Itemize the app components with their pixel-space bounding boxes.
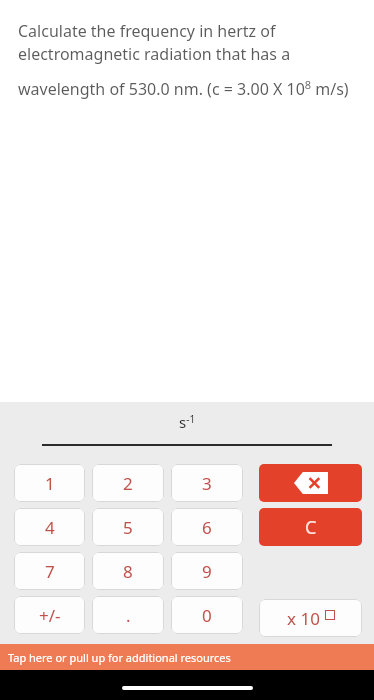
button[interactable]: +/-	[14, 596, 85, 634]
staticText: 9	[202, 560, 212, 583]
staticText: 4	[45, 516, 55, 539]
staticText: C	[305, 515, 317, 540]
staticText: 2	[123, 472, 133, 495]
button[interactable]: .	[92, 596, 164, 634]
button[interactable]: C	[259, 508, 362, 546]
button[interactable]: 2	[92, 464, 164, 502]
button[interactable]: Times ten to the power	[259, 599, 362, 637]
button[interactable]: 9	[171, 552, 243, 590]
button[interactable]: 0	[171, 596, 243, 634]
button[interactable]: 5	[92, 508, 164, 546]
staticText: 5	[123, 516, 133, 539]
button[interactable]: 7	[14, 552, 85, 590]
staticText: s-1	[179, 412, 196, 432]
staticText: x 10	[287, 607, 320, 630]
button[interactable]: Tap here or pull up for additional resou…	[0, 644, 374, 670]
staticText: +/-	[39, 604, 61, 627]
staticText: 3	[202, 472, 212, 495]
staticText: 8	[123, 560, 133, 583]
button[interactable]: 6	[171, 508, 243, 546]
button[interactable]: 8	[92, 552, 164, 590]
button[interactable]: 4	[14, 508, 85, 546]
staticText: 0	[202, 604, 212, 627]
staticText: Tap here or pull up for additional resou…	[8, 650, 231, 665]
button[interactable]: Backspace	[259, 464, 362, 502]
staticText: Calculate the frequency in hertz of elec…	[18, 20, 360, 99]
staticText: .	[126, 604, 131, 627]
staticText: 1	[45, 472, 55, 495]
staticText: 7	[45, 560, 55, 583]
button[interactable]: 3	[171, 464, 243, 502]
button[interactable]: 1	[14, 464, 85, 502]
staticText: 6	[202, 516, 212, 539]
